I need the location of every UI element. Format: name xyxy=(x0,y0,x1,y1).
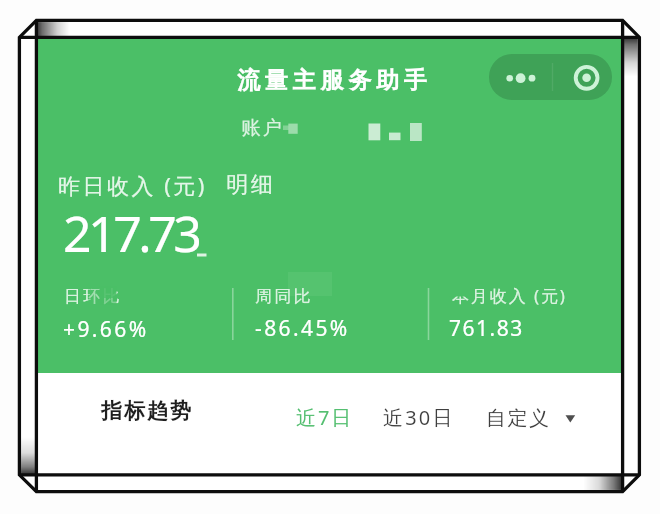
button[interactable]: 自定义 xyxy=(486,406,551,431)
button[interactable]: 近30日 xyxy=(383,404,455,431)
staticText: 流量主服务助手 xyxy=(237,66,432,95)
staticText: 本月收入 (元) xyxy=(452,284,567,307)
staticText: 明细 xyxy=(225,171,274,199)
staticText: 昨日收入 (元) xyxy=(58,170,207,200)
button[interactable]: 明细 xyxy=(225,171,274,199)
button[interactable]: Mini program menu and close xyxy=(489,54,612,100)
button[interactable]: 近7日 xyxy=(296,404,354,431)
staticText: 761.83 xyxy=(449,314,524,343)
staticText: 自定义 xyxy=(486,406,551,431)
staticText: 周同比 xyxy=(255,286,313,307)
staticText: 217.73 xyxy=(63,199,199,267)
staticText: +9.66% xyxy=(63,315,149,344)
staticText: -86.45% xyxy=(255,314,350,343)
staticText: 指标趋势 xyxy=(100,398,192,424)
staticText: 近7日 xyxy=(296,404,354,431)
staticText: 日环比 xyxy=(64,286,122,307)
button[interactable]: 指标趋势 xyxy=(100,398,192,424)
staticText: 近30日 xyxy=(383,404,455,431)
staticText: 账户 xyxy=(240,116,283,140)
